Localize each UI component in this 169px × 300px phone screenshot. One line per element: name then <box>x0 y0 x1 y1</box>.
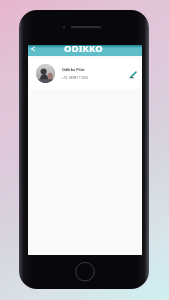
staticText: Odikko Pilot <box>62 67 85 72</box>
button[interactable]: Edit profile <box>128 69 139 80</box>
button[interactable]: Odikko Pilot <box>30 59 140 89</box>
button[interactable]: Back <box>28 44 37 53</box>
staticText: +91-9898111000 <box>62 75 88 80</box>
staticText: ODIKKO <box>64 42 103 53</box>
